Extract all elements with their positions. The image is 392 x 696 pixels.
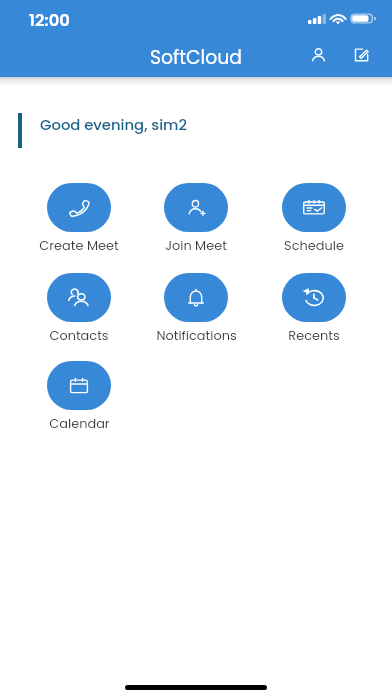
button[interactable]: Calendar bbox=[29, 359, 129, 432]
staticText: Notifications bbox=[156, 326, 237, 344]
staticText: Join Meet bbox=[165, 236, 227, 254]
button[interactable]: Join Meet bbox=[146, 181, 246, 254]
staticText: SoftCloud bbox=[0, 44, 392, 70]
staticText: Recents bbox=[288, 326, 340, 344]
staticText: Calendar bbox=[49, 414, 110, 432]
button[interactable]: Schedule bbox=[264, 181, 364, 254]
button[interactable]: Contacts bbox=[29, 271, 129, 344]
staticText: Good evening, sim2 bbox=[40, 114, 188, 135]
button[interactable]: Create Meet bbox=[29, 181, 129, 254]
staticText: 12:00 bbox=[29, 9, 70, 32]
button[interactable]: Account bbox=[298, 35, 338, 75]
button[interactable]: Recents bbox=[264, 271, 364, 344]
staticText: Contacts bbox=[49, 326, 109, 344]
button[interactable]: Compose bbox=[341, 35, 381, 75]
staticText: Schedule bbox=[284, 236, 344, 254]
staticText: Create Meet bbox=[39, 236, 119, 254]
button[interactable]: Notifications bbox=[146, 271, 246, 344]
